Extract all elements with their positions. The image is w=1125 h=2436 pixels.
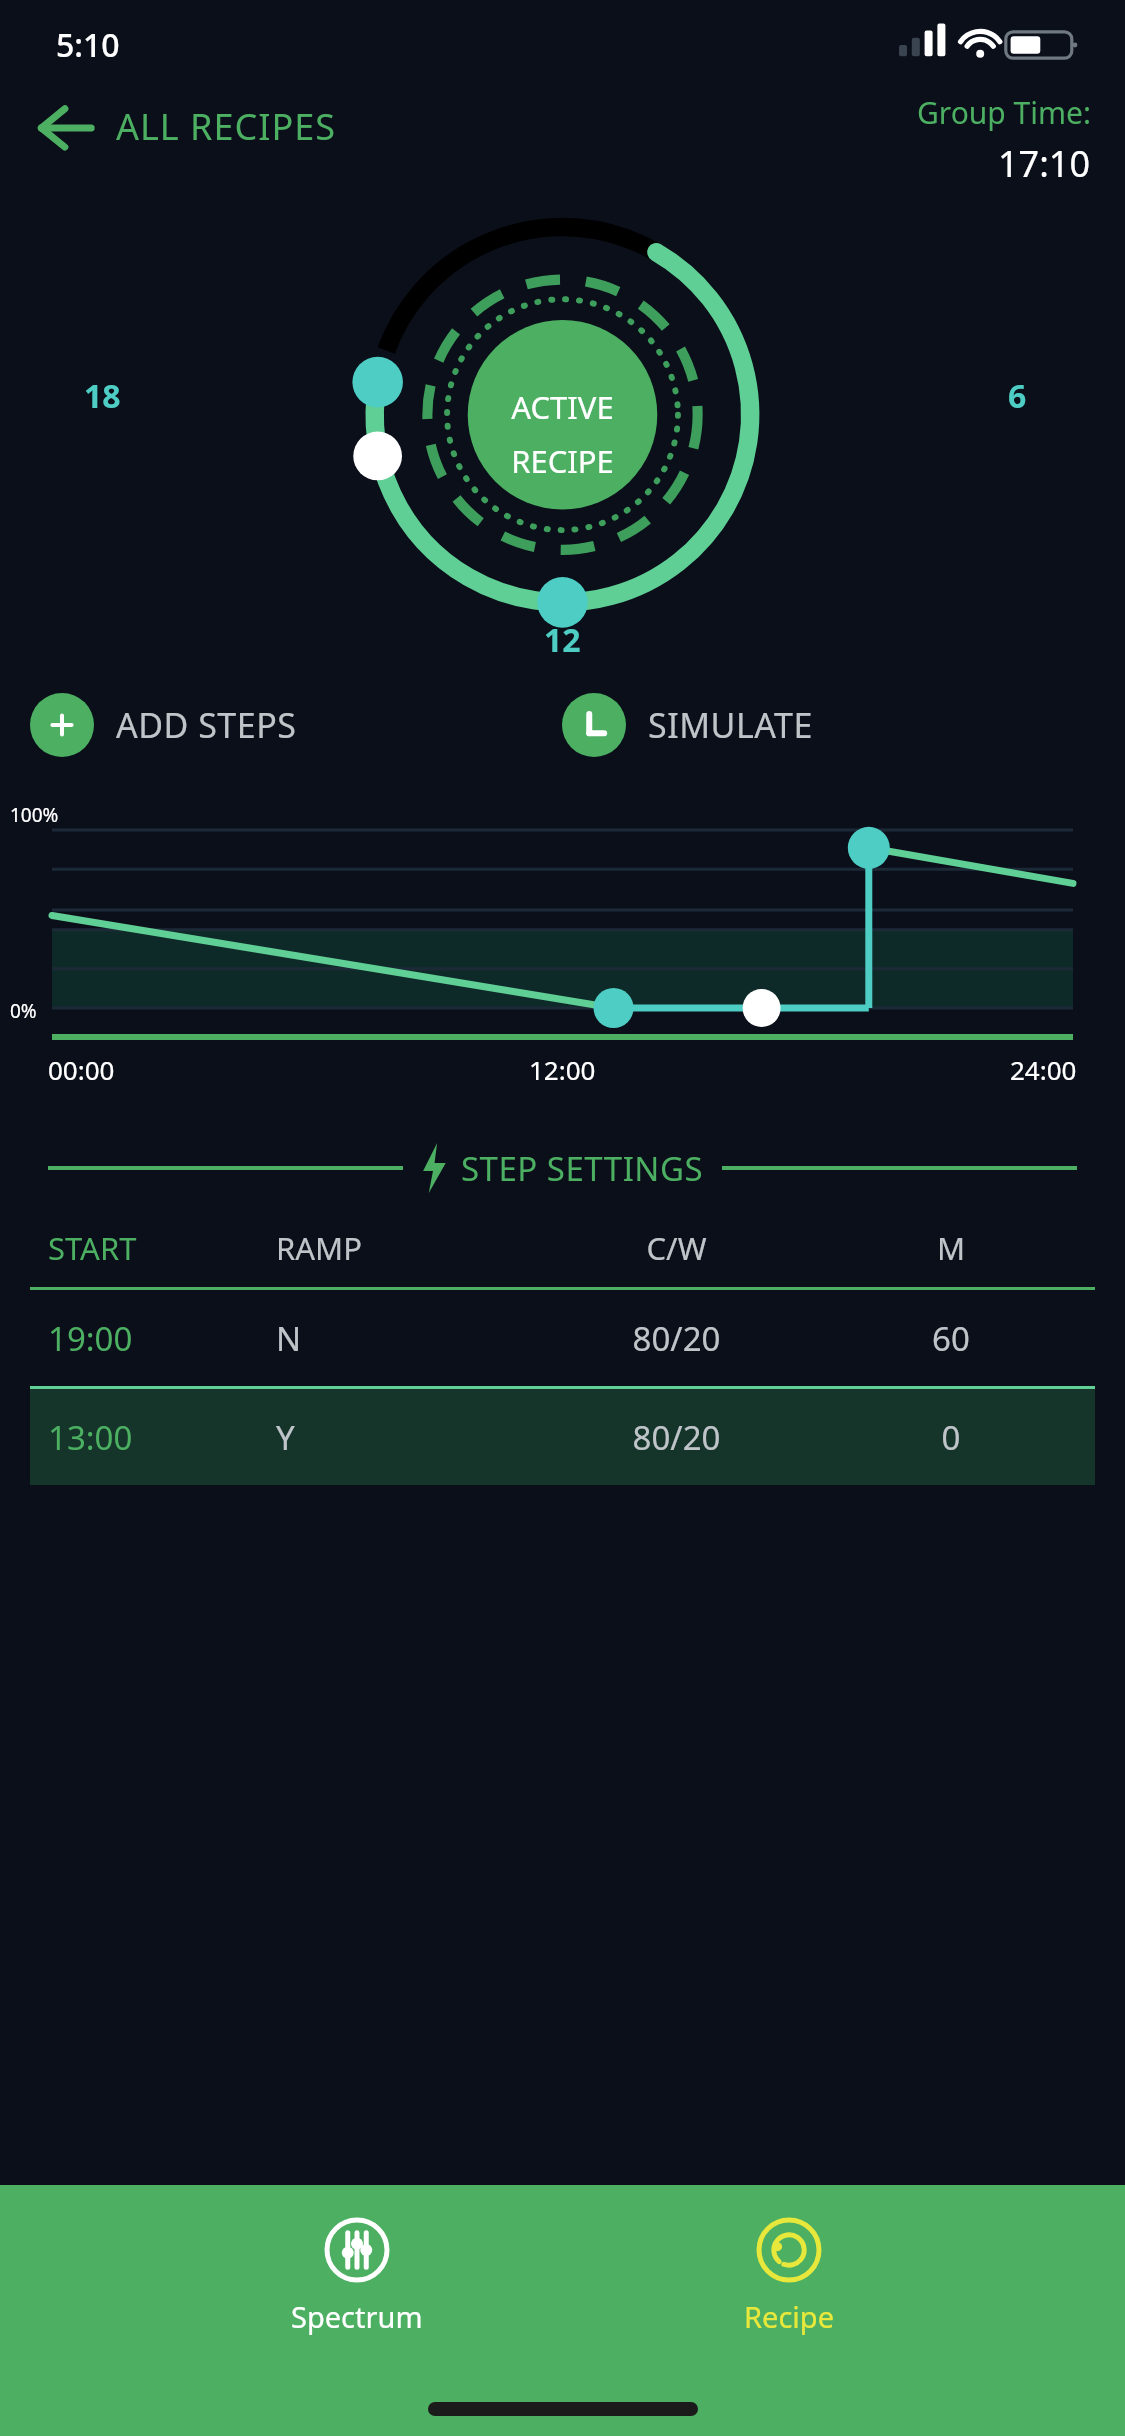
staticText: 80/20: [528, 1316, 825, 1361]
other: Back: [38, 103, 94, 151]
staticText: 100%: [10, 802, 59, 828]
button[interactable]: SIMULATE: [562, 693, 1095, 757]
staticText: 12: [544, 618, 581, 662]
button[interactable]: 19:00: [30, 1290, 1095, 1386]
staticText: SIMULATE: [648, 702, 813, 748]
staticText: STEP SETTINGS: [461, 1146, 704, 1191]
staticText: 18: [84, 374, 121, 418]
staticText: 19:00: [48, 1316, 276, 1361]
other: Recipe: [756, 2217, 822, 2283]
staticText: 17:10: [998, 139, 1091, 188]
button[interactable]: Recipe: [714, 2211, 864, 2342]
staticText: 0%: [10, 998, 37, 1024]
staticText: 60: [825, 1316, 1077, 1361]
staticText: RAMP: [276, 1227, 528, 1269]
staticText: 12:00: [529, 1052, 596, 1087]
staticText: RECIPE: [511, 440, 614, 482]
button[interactable]: ADD STEPS: [30, 693, 562, 757]
staticText: Y: [276, 1415, 528, 1460]
other: Spectrum: [324, 2217, 390, 2283]
staticText: M: [825, 1227, 1077, 1269]
staticText: ALL RECIPES: [116, 102, 337, 151]
staticText: ACTIVE: [511, 386, 614, 428]
staticText: ADD STEPS: [116, 702, 297, 748]
staticText: 24:00: [1010, 1052, 1077, 1087]
staticText: 13:00: [48, 1415, 276, 1460]
staticText: Recipe: [744, 2297, 834, 2336]
staticText: C/W: [528, 1227, 825, 1269]
staticText: 5:10: [56, 23, 120, 67]
staticText: START: [48, 1227, 276, 1269]
staticText: 80/20: [528, 1415, 825, 1460]
staticText: 6: [1008, 374, 1027, 418]
staticText: Group Time:: [917, 92, 1091, 133]
staticText: 0: [825, 1415, 1077, 1460]
staticText: Spectrum: [291, 2297, 423, 2336]
staticText: 00:00: [48, 1052, 115, 1087]
button[interactable]: Back: [30, 96, 345, 157]
button[interactable]: 13:00: [30, 1389, 1095, 1485]
staticText: N: [276, 1316, 528, 1361]
button[interactable]: Spectrum: [261, 2211, 453, 2342]
